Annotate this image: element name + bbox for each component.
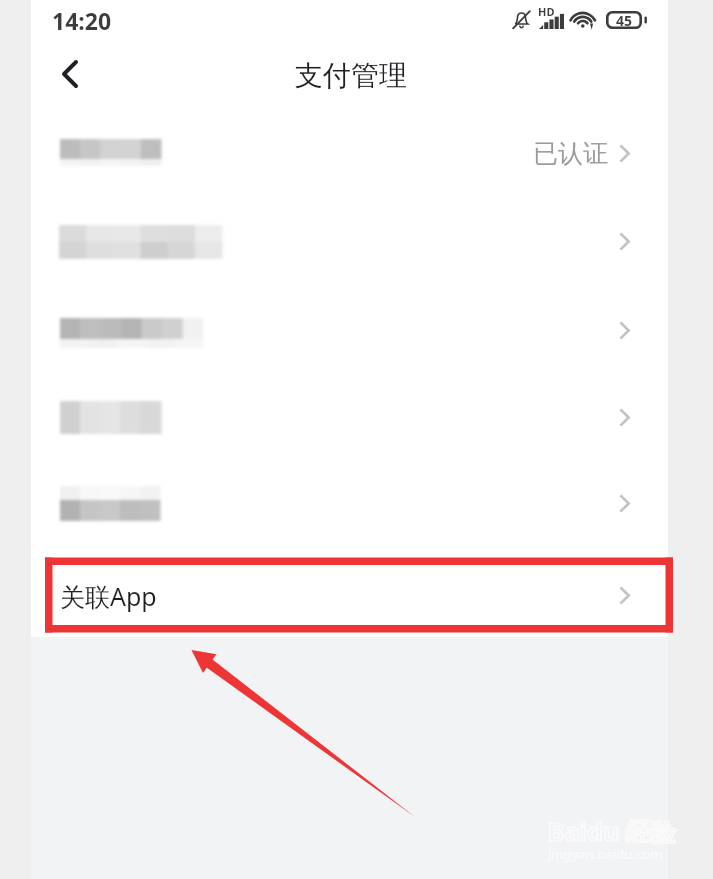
- button[interactable]: [31, 286, 668, 374]
- button[interactable]: 已认证: [31, 109, 668, 197]
- staticText: 已认证: [533, 138, 608, 169]
- button[interactable]: Back: [41, 48, 99, 106]
- button[interactable]: [31, 373, 668, 461]
- staticText: 14:20: [52, 5, 112, 36]
- staticText: 关联App: [60, 579, 157, 613]
- staticText: Baidu 经验: [548, 814, 676, 848]
- staticText: 45: [616, 11, 633, 29]
- button[interactable]: 关联App: [31, 558, 668, 633]
- button[interactable]: [31, 197, 668, 285]
- staticText: 支付管理: [295, 58, 407, 93]
- staticText: HD: [538, 4, 555, 19]
- button[interactable]: [31, 459, 668, 547]
